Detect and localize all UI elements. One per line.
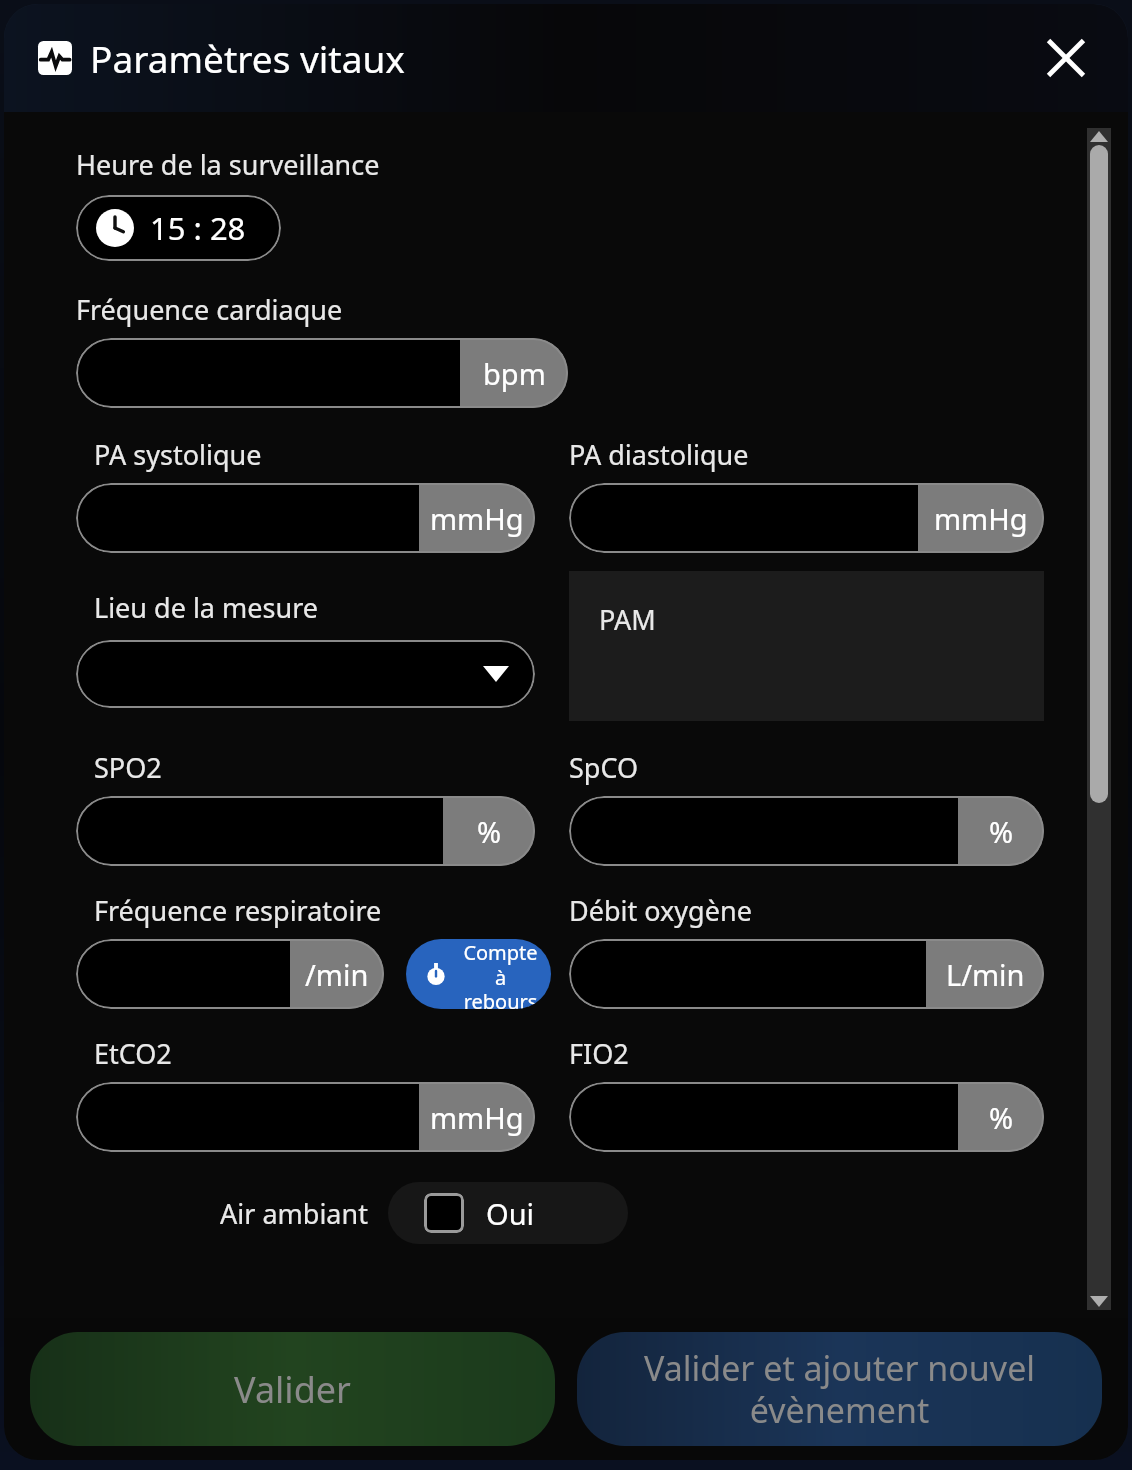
button[interactable]: Oui [388, 1182, 628, 1244]
staticText: Valider [234, 1365, 351, 1414]
staticText: PA systolique [94, 436, 262, 473]
staticText: FIO2 [569, 1035, 629, 1072]
button[interactable]: 15 : 28 [76, 195, 281, 261]
staticText: PAM [599, 601, 656, 638]
button[interactable]: mmHg [569, 483, 1044, 553]
button[interactable]: PAM [569, 571, 1044, 721]
staticText: Heure de la surveillance [76, 146, 380, 183]
staticText: Débit oxygène [569, 892, 752, 929]
button[interactable]: bpm [76, 338, 568, 408]
staticText: Lieu de la mesure [94, 589, 318, 626]
button[interactable]: % [76, 796, 535, 866]
button[interactable]: mmHg [76, 483, 535, 553]
staticText: Air ambiant [220, 1195, 368, 1232]
staticText: mmHg [934, 499, 1028, 538]
staticText: % [477, 812, 502, 851]
staticText: mmHg [430, 1098, 524, 1137]
staticText: Valider et ajouter nouvel évènement [597, 1345, 1082, 1433]
staticText: % [989, 812, 1014, 851]
staticText: Paramètres vitaux [90, 33, 405, 83]
staticText: Fréquence respiratoire [94, 892, 382, 929]
staticText: PA diastolique [569, 436, 749, 473]
staticText: L/min [946, 955, 1025, 994]
button[interactable]: /min [76, 939, 384, 1009]
button[interactable]: L/min [569, 939, 1044, 1009]
button[interactable]: Fermer [1030, 22, 1102, 94]
staticText: mmHg [430, 499, 524, 538]
staticText: Oui [486, 1194, 535, 1233]
staticText: SPO2 [94, 749, 162, 786]
button[interactable]: % [569, 1082, 1044, 1152]
staticText: 15 : 28 [150, 207, 246, 249]
staticText: Compte à rebours [458, 939, 543, 1009]
button[interactable]: Valider [30, 1332, 555, 1446]
staticText: EtCO2 [94, 1035, 172, 1072]
staticText: % [989, 1098, 1014, 1137]
button[interactable]: Lieu de la mesure [76, 640, 535, 708]
staticText: SpCO [569, 749, 639, 786]
button[interactable]: Valider et ajouter nouvel évènement [577, 1332, 1102, 1446]
staticText: Fréquence cardiaque [76, 291, 343, 328]
staticText: bpm [483, 354, 546, 393]
button[interactable]: mmHg [76, 1082, 535, 1152]
button[interactable]: % [569, 796, 1044, 866]
staticText: /min [305, 955, 369, 994]
button[interactable]: Compte à rebours [406, 939, 551, 1009]
